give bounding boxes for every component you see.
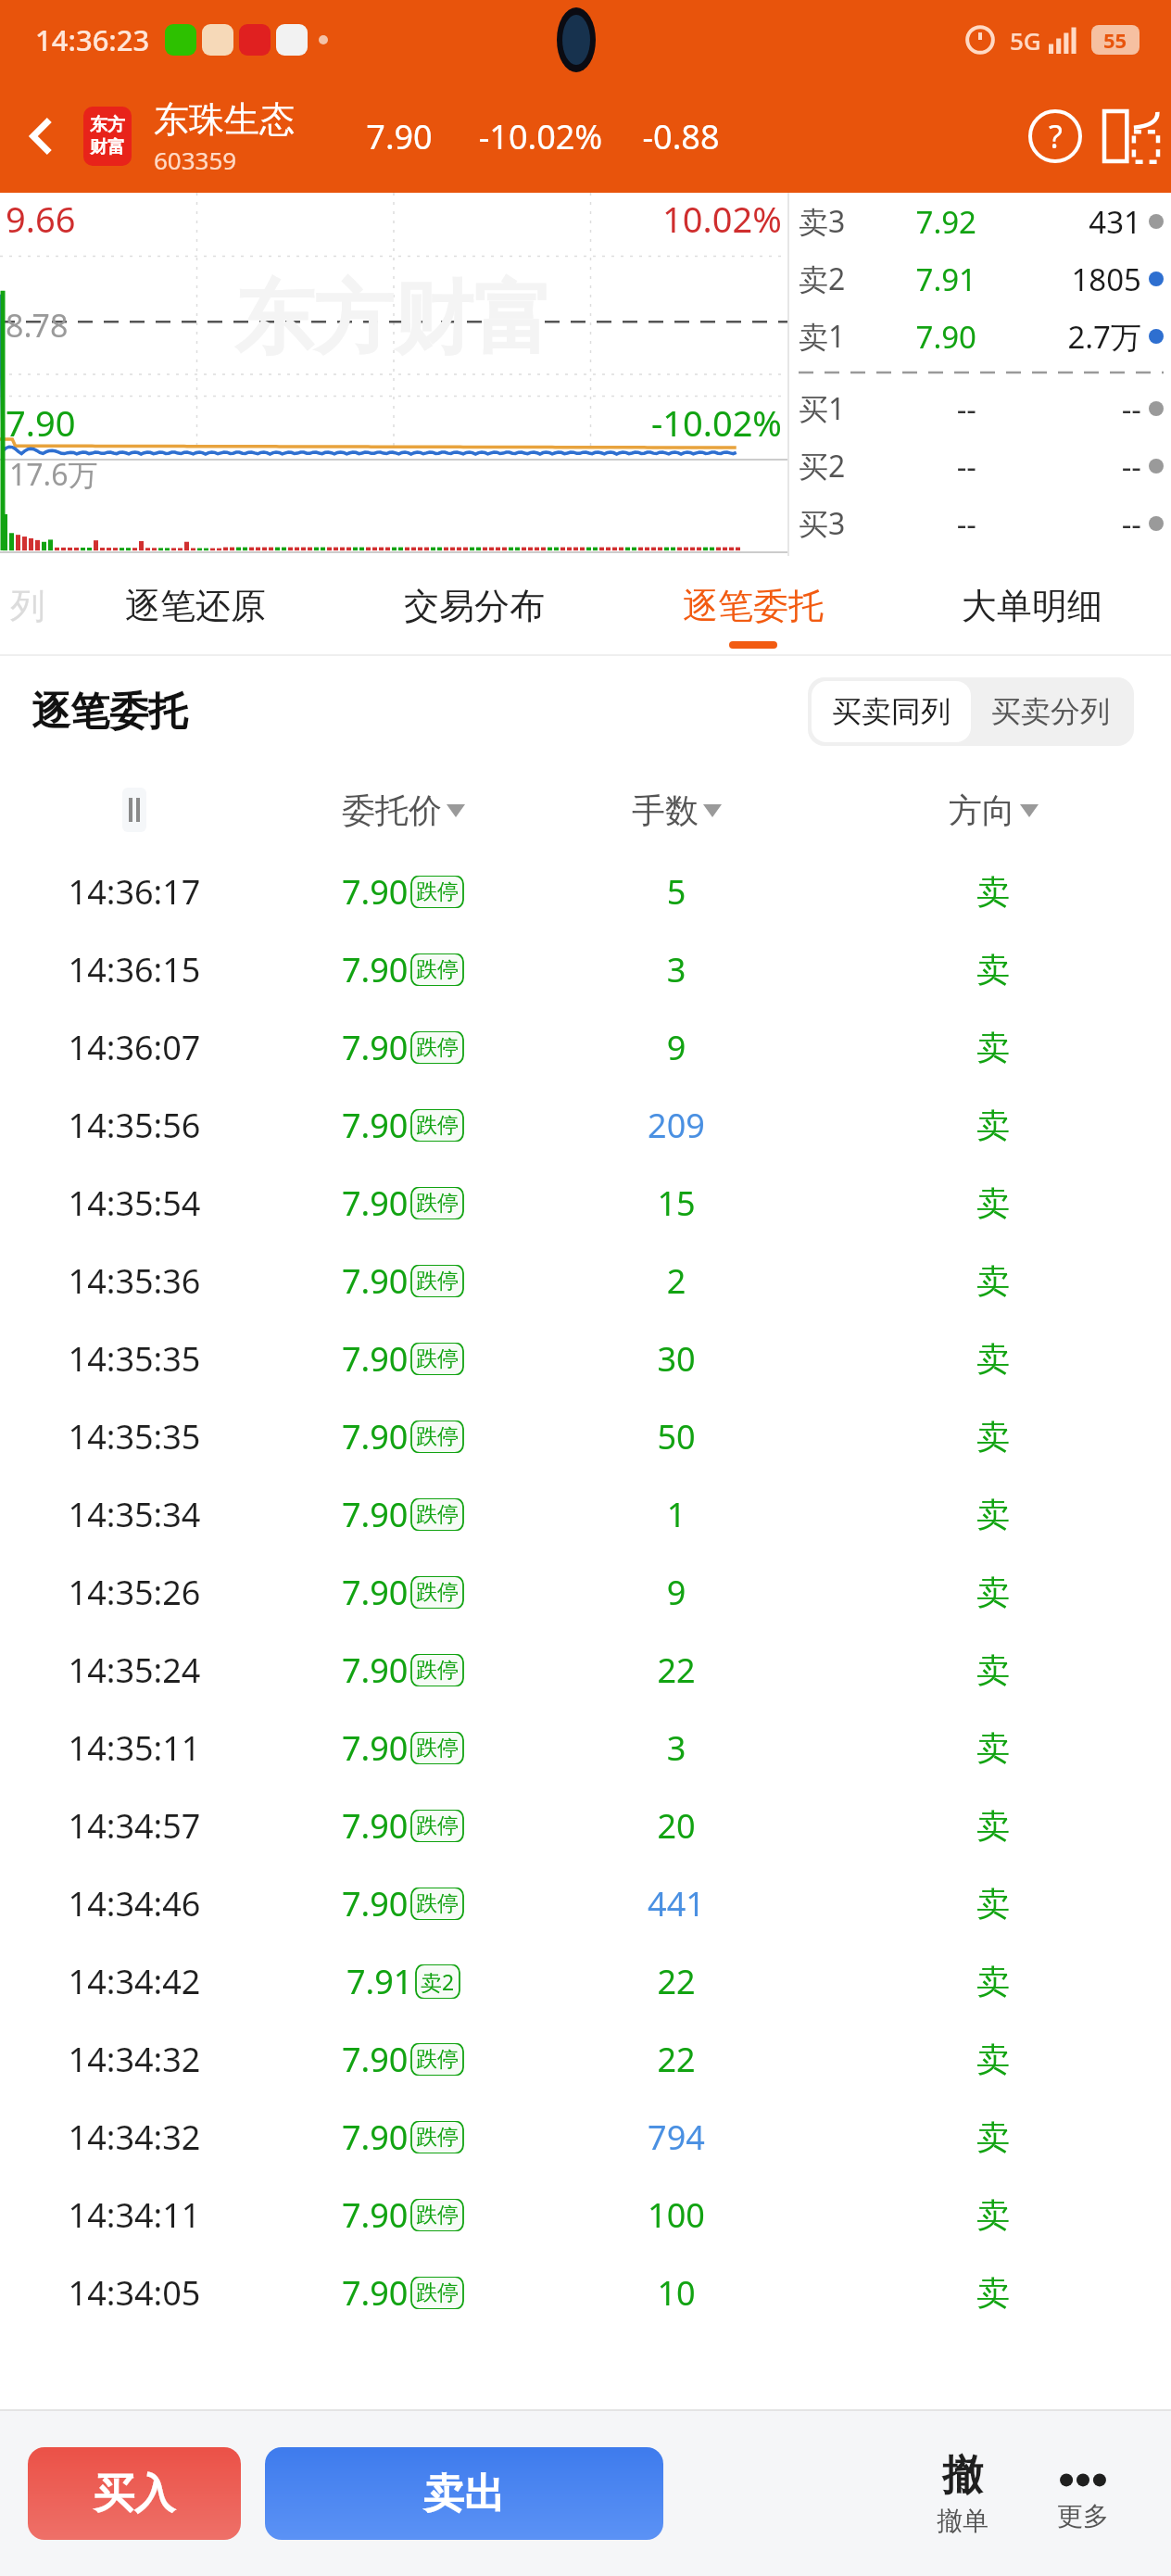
staticText: 卖2 [799,259,875,299]
staticText: 卖 [815,1649,1171,1691]
button[interactable]: 手数 [537,789,815,831]
button[interactable]: Back [0,80,83,193]
staticText: 跌停 [416,1501,459,1528]
staticText: 跌停 [416,1735,459,1762]
button[interactable]: 14:35:24 [0,1631,1171,1709]
button[interactable]: Help [1019,100,1091,172]
button[interactable]: 卖1 [799,308,1164,365]
button[interactable]: 14:35:11 [0,1709,1171,1787]
staticText: 14:35:34 [0,1492,269,1537]
staticText: 3 [537,1725,815,1771]
staticText: 9 [537,1570,815,1615]
staticText: 14:35:35 [0,1336,269,1382]
button[interactable]: 卖出 [265,2447,663,2540]
staticText: 卖 [815,2116,1171,2158]
staticText: 买卖分列 [991,693,1110,730]
staticText: 7.90 [342,1648,409,1693]
button[interactable]: 东方财富 [83,107,132,166]
button[interactable]: 卖3 [799,193,1164,250]
button[interactable]: 撤 [902,2450,1023,2537]
button[interactable]: 14:34:57 [0,1787,1171,1864]
staticText: 7.90 [342,2115,409,2160]
button[interactable]: 买1 [799,380,1164,437]
staticText: 431 [976,201,1141,243]
staticText: -- [875,503,976,545]
staticText: 跌停 [416,2046,459,2073]
staticText: 7.90 [342,1492,409,1537]
staticText: 跌停 [416,956,459,983]
staticText: 列 [10,584,45,628]
staticText: 交易分布 [404,584,545,628]
button[interactable]: 买卖分列 [971,681,1130,742]
staticText: 14:34:46 [0,1881,269,1926]
button[interactable]: 买2 [799,437,1164,495]
button[interactable]: 更多 [1023,2456,1143,2532]
staticText: 603359 [154,144,237,176]
staticText: 买2 [799,446,875,486]
staticText: 209 [537,1103,815,1148]
staticText: 卖 [815,1572,1171,1613]
staticText: 跌停 [416,1812,459,1839]
staticText: 跌停 [416,1423,459,1450]
staticText: 7.90 [342,1025,409,1070]
button[interactable]: 14:36:07 [0,1008,1171,1086]
button[interactable]: 14:34:11 [0,2176,1171,2254]
button[interactable]: 14:36:15 [0,930,1171,1008]
button[interactable]: 逐笔委托 [613,556,892,656]
button[interactable]: 14:35:34 [0,1475,1171,1553]
staticText: 卖 [815,1494,1171,1535]
staticText: 15 [537,1181,815,1226]
staticText: 更多 [1057,2500,1109,2532]
button[interactable]: 14:35:56 [0,1086,1171,1164]
button[interactable]: 14:34:05 [0,2254,1171,2331]
button[interactable]: 14:35:54 [0,1164,1171,1242]
staticText: 2.7万 [976,316,1141,358]
staticText: 东方财富 [234,269,553,369]
button[interactable]: 委托价 [269,789,537,831]
staticText: 跌停 [416,1034,459,1061]
button[interactable]: 14:34:42 [0,1942,1171,2020]
button[interactable]: 买卖同列 [812,681,971,742]
button[interactable]: 14:35:35 [0,1320,1171,1397]
staticText: 3 [537,947,815,992]
staticText: 逐笔还原 [125,584,266,628]
button[interactable]: 14:34:32 [0,2098,1171,2176]
staticText: 7.90 [342,1803,409,1849]
button[interactable]: 14:35:36 [0,1242,1171,1320]
staticText: 7.90 [342,1336,409,1382]
button[interactable]: 14:35:26 [0,1553,1171,1631]
staticText: 14:35:36 [0,1258,269,1304]
staticText: 8.78 [6,304,69,347]
staticText: 跌停 [416,1579,459,1606]
button[interactable]: 方向 [815,789,1171,831]
button[interactable]: Split screen [1091,96,1171,176]
staticText: 1805 [976,259,1141,300]
staticText: 2 [537,1258,815,1304]
staticText: 卖 [815,1727,1171,1769]
staticText: 7.91 [346,1959,413,2004]
button[interactable]: 14:34:46 [0,1864,1171,1942]
staticText: 7.90 [342,2037,409,2082]
button[interactable]: Pause [122,788,146,832]
staticText: 逐笔委托 [31,688,187,737]
button[interactable]: 14:34:32 [0,2020,1171,2098]
staticText: 卖 [815,871,1171,913]
staticText: 买3 [799,503,875,544]
staticText: 跌停 [416,1657,459,1684]
staticText: 卖 [815,2272,1171,2314]
button[interactable]: 14:35:35 [0,1397,1171,1475]
button[interactable]: 卖2 [799,250,1164,308]
button[interactable]: 14:36:17 [0,852,1171,930]
button[interactable]: 列 [0,556,56,656]
button[interactable]: 交易分布 [334,556,613,656]
button[interactable]: 逐笔还原 [56,556,334,656]
button[interactable]: 买3 [799,495,1164,552]
staticText: 7.92 [875,201,976,243]
button[interactable]: 大单明细 [892,556,1171,656]
button[interactable]: 买入 [28,2447,241,2540]
staticText: 跌停 [416,1190,459,1217]
staticText: 7.90 [6,398,76,447]
staticText: -10.02% [651,398,782,447]
staticText: 7.90 [342,1881,409,1926]
staticText: 14:35:54 [0,1181,269,1226]
